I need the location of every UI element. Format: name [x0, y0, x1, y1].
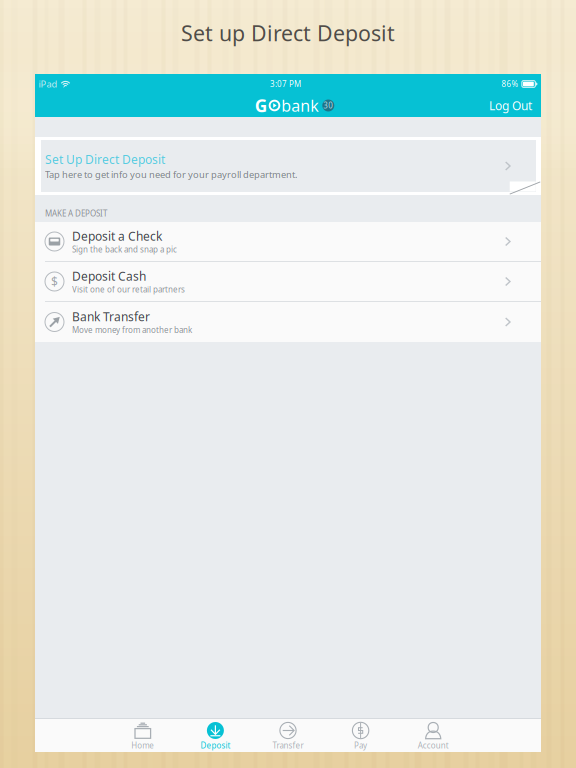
button[interactable]: Account — [397, 719, 469, 752]
staticText: Tap here to get info you need for your p… — [45, 168, 298, 181]
staticText: Deposit — [200, 740, 230, 751]
staticText: MAKE A DEPOSIT — [45, 208, 107, 219]
staticText: Bank Transfer — [72, 309, 150, 325]
staticText: iPad — [38, 78, 57, 90]
button[interactable]: Transfer — [252, 719, 324, 752]
staticText: Set Up Direct Deposit — [45, 151, 165, 167]
staticText: G — [255, 94, 268, 117]
staticText: $ — [51, 273, 58, 289]
staticText: bank — [281, 95, 319, 116]
staticText: Visit one of our retail partners — [72, 284, 185, 295]
button[interactable]: Deposit — [179, 719, 252, 752]
staticText: Deposit Cash — [72, 268, 146, 284]
staticText: 30 — [323, 100, 333, 111]
staticText: Sign the back and snap a pic — [72, 244, 177, 255]
button[interactable]: Home — [106, 719, 179, 752]
button[interactable]: Bank Transfer — [35, 302, 541, 342]
staticText: Deposit a Check — [72, 228, 162, 244]
staticText: Move money from another bank — [72, 325, 192, 335]
staticText: Log Out — [489, 97, 532, 113]
staticText: Account — [418, 740, 449, 751]
staticText: 86% — [501, 79, 518, 89]
button[interactable]: $ — [35, 262, 541, 302]
staticText: 3:07 PM — [270, 79, 301, 89]
staticText: Transfer — [272, 740, 303, 751]
button[interactable]: Log Out — [480, 94, 541, 117]
staticText: Set up Direct Deposit — [181, 19, 395, 47]
staticText: Pay — [354, 740, 367, 751]
staticText: Home — [131, 740, 154, 751]
button[interactable]: Deposit a Check — [35, 222, 541, 262]
button[interactable]: Pay — [324, 719, 397, 752]
button[interactable]: Set Up Direct Deposit — [35, 137, 541, 195]
